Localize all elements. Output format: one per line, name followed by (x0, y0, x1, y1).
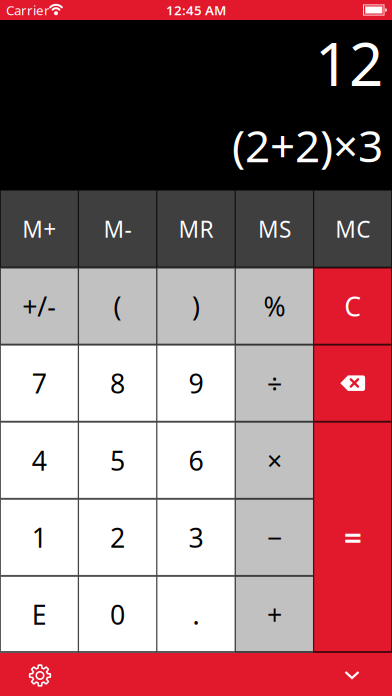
staticText: M- (104, 214, 132, 244)
staticText: + (267, 597, 282, 632)
button[interactable]: 5 (78, 422, 157, 499)
staticText: +/- (22, 288, 56, 324)
staticText: 3 (188, 520, 203, 555)
staticText: C (344, 288, 361, 324)
button[interactable]: = (314, 422, 392, 653)
button[interactable]: Delete (314, 345, 392, 422)
staticText: 12 (315, 23, 383, 103)
staticText: M+ (22, 214, 56, 244)
staticText: % (263, 288, 285, 324)
button[interactable]: % (235, 268, 314, 345)
staticText: ( (114, 288, 122, 324)
staticText: × (267, 443, 282, 478)
button[interactable]: C (314, 268, 392, 345)
staticText: 12:45 AM (166, 1, 226, 19)
button[interactable]: E (0, 576, 78, 653)
staticText: Carrier (6, 1, 50, 19)
button[interactable]: MS (235, 190, 314, 268)
button[interactable]: M+ (0, 190, 78, 268)
staticText: MC (335, 214, 370, 244)
button[interactable]: 8 (78, 345, 157, 422)
button[interactable]: Settings (17, 653, 61, 696)
button[interactable]: 7 (0, 345, 78, 422)
button[interactable]: 0 (78, 576, 157, 653)
staticText: 4 (32, 443, 47, 478)
button[interactable]: − (235, 499, 314, 576)
staticText: MS (258, 214, 291, 244)
staticText: 5 (110, 443, 125, 478)
button[interactable]: +/- (0, 268, 78, 345)
staticText: 1 (32, 520, 47, 555)
button[interactable]: 2 (78, 499, 157, 576)
button[interactable]: ) (157, 268, 235, 345)
staticText: . (192, 597, 199, 632)
staticText: MR (178, 214, 213, 244)
button[interactable]: 1 (0, 499, 78, 576)
staticText: ) (192, 288, 200, 324)
staticText: (2+2)×3 (232, 116, 383, 174)
button[interactable]: MC (314, 190, 392, 268)
staticText: = (344, 516, 362, 559)
button[interactable]: 6 (157, 422, 235, 499)
button[interactable]: × (235, 422, 314, 499)
staticText: 2 (110, 520, 125, 555)
staticText: 9 (188, 365, 203, 401)
button[interactable]: ( (78, 268, 157, 345)
button[interactable]: . (157, 576, 235, 653)
button[interactable]: Hide keypad (330, 653, 374, 696)
staticText: E (32, 597, 47, 632)
button[interactable]: M- (78, 190, 157, 268)
button[interactable]: 3 (157, 499, 235, 576)
button[interactable]: 9 (157, 345, 235, 422)
staticText: 0 (110, 597, 125, 632)
staticText: − (267, 520, 282, 555)
button[interactable]: + (235, 576, 314, 653)
button[interactable]: ÷ (235, 345, 314, 422)
staticText: 6 (188, 443, 203, 478)
staticText: 7 (32, 365, 47, 401)
button[interactable]: 4 (0, 422, 78, 499)
staticText: ÷ (267, 365, 282, 401)
staticText: 8 (110, 365, 125, 401)
button[interactable]: MR (157, 190, 235, 268)
